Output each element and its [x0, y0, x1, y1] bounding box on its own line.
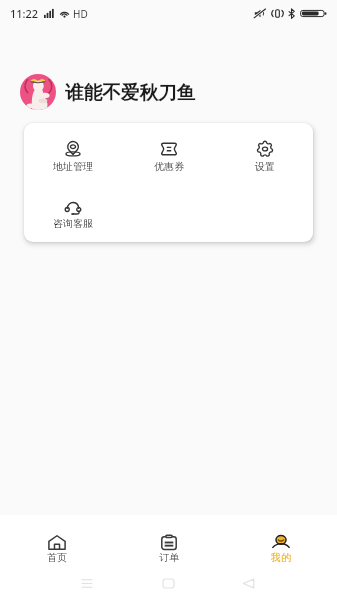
button[interactable]: 首页	[0, 515, 113, 571]
button[interactable]: 设置	[217, 141, 313, 173]
staticText: 首页	[47, 551, 67, 564]
staticText: 优惠券	[154, 160, 184, 173]
staticText: 设置	[255, 160, 275, 173]
button[interactable]: 我的	[225, 515, 337, 571]
button[interactable]: 优惠券	[121, 141, 217, 173]
staticText: 11:22	[10, 6, 39, 21]
staticText: 地址管理	[53, 160, 93, 173]
button[interactable]: 谁能不爱秋刀鱼	[20, 74, 337, 110]
button[interactable]: Back	[236, 571, 260, 595]
staticText: 订单	[159, 551, 179, 564]
button[interactable]: 咨询客服	[24, 198, 121, 230]
staticText: HD	[73, 7, 88, 21]
button[interactable]: 订单	[113, 515, 225, 571]
button[interactable]: Recents	[75, 571, 99, 595]
button[interactable]: 地址管理	[24, 141, 121, 173]
staticText: 我的	[271, 551, 291, 564]
staticText: 谁能不爱秋刀鱼	[65, 81, 196, 104]
button[interactable]: Home	[156, 571, 180, 595]
staticText: 咨询客服	[53, 217, 93, 230]
